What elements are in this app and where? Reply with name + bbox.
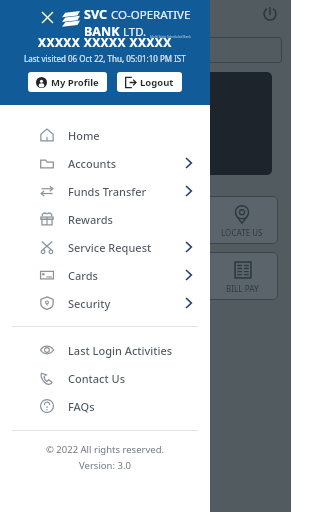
staticText: XXXXX XXXXX XXXXX — [38, 34, 172, 50]
button[interactable]: Power — [258, 2, 282, 26]
staticText: Home — [68, 128, 100, 143]
staticText: Multi State Scheduled Bank — [150, 35, 191, 39]
staticText: Security — [68, 296, 111, 311]
button[interactable] — [18, 72, 96, 175]
button[interactable] — [194, 72, 272, 175]
staticText: Logout — [140, 76, 174, 89]
button[interactable]: My Profile — [28, 72, 107, 92]
button[interactable]: Last Login Activities — [0, 336, 210, 364]
staticText: Last visited 06 Oct 22, Thu, 05:01:10 PM… — [24, 53, 186, 64]
button[interactable]: Term Deposits — [60, 37, 282, 63]
staticText: CO-OPERATIVE — [111, 7, 191, 23]
button[interactable]: Security — [0, 289, 210, 317]
staticText: Version: 3.0 — [0, 459, 210, 472]
button[interactable]: Cards — [0, 261, 210, 289]
staticText: Accounts — [68, 156, 117, 171]
staticText: Funds Transfer — [68, 184, 147, 199]
staticText: Contact Us — [68, 371, 126, 386]
button[interactable]: FAQs — [0, 392, 210, 420]
button[interactable]: BILL PAY — [206, 252, 278, 300]
staticText: SVC — [84, 6, 111, 23]
staticText: Service Request — [68, 240, 152, 255]
button[interactable]: Contact Us — [0, 364, 210, 392]
button[interactable]: Close — [36, 6, 58, 28]
staticText: BANK — [84, 23, 123, 40]
staticText: LTD. — [123, 24, 147, 40]
button[interactable]: Service Request — [0, 233, 210, 261]
staticText: My Profile — [51, 76, 99, 89]
staticText: BILL PAY — [226, 283, 259, 294]
staticText: Rewards — [68, 212, 113, 227]
staticText: FAQs — [68, 399, 95, 414]
staticText: © 2022 All rights reserved. — [0, 443, 210, 456]
button[interactable]: Funds Transfer — [0, 177, 210, 205]
button[interactable]: Rewards — [0, 205, 210, 233]
staticText: Last Login Activities — [68, 343, 173, 358]
button[interactable]: Logout — [117, 72, 182, 92]
staticText: Term Deposits — [66, 41, 154, 59]
button[interactable]: Home — [0, 121, 210, 149]
button[interactable] — [106, 72, 184, 175]
staticText: Cards — [68, 268, 98, 283]
button[interactable]: LOCATE US — [206, 196, 278, 244]
button[interactable]: Accounts — [0, 149, 210, 177]
staticText: LOCATE US — [221, 227, 263, 238]
